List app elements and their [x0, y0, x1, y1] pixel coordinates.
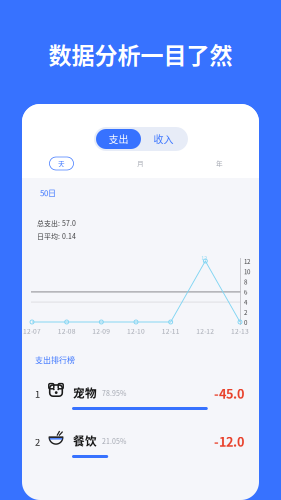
- staticText: 2: [35, 435, 40, 448]
- staticText: 4: [244, 298, 247, 307]
- staticText: 12-07: [23, 326, 41, 336]
- staticText: 12-12: [196, 326, 214, 336]
- staticText: 12: [244, 257, 250, 266]
- staticText: 12: [201, 254, 207, 262]
- staticText: 支出: [108, 132, 128, 146]
- staticText: 收入: [153, 132, 173, 146]
- button[interactable]: 月: [101, 157, 180, 170]
- staticText: 50日: [40, 187, 56, 199]
- button[interactable]: 1: [22, 378, 259, 422]
- staticText: 10: [244, 267, 250, 276]
- button[interactable]: 天: [49, 157, 73, 170]
- staticText: 餐饮: [73, 432, 97, 449]
- staticText: 12-11: [162, 326, 180, 336]
- staticText: 12-13: [231, 326, 249, 336]
- staticText: 21.05%: [102, 436, 126, 446]
- staticText: 支出排行榜: [35, 354, 75, 366]
- staticText: 6: [244, 287, 247, 296]
- staticText: 年: [216, 159, 223, 168]
- staticText: -45.0: [214, 384, 244, 402]
- button[interactable]: 收入: [141, 129, 186, 149]
- staticText: 数据分析一目了然: [48, 37, 232, 71]
- staticText: -12.0: [214, 432, 244, 450]
- staticText: 天: [58, 159, 65, 168]
- staticText: 8: [244, 277, 247, 286]
- staticText: 月: [137, 159, 144, 168]
- staticText: 总支出: 57.0: [37, 218, 76, 228]
- button[interactable]: 年: [180, 157, 259, 170]
- staticText: 2: [244, 308, 247, 317]
- staticText: 宠物: [73, 384, 97, 401]
- staticText: 日平均: 0.14: [37, 231, 76, 241]
- button[interactable]: 支出: [96, 129, 141, 149]
- staticText: 12-09: [92, 326, 110, 336]
- staticText: 1: [35, 387, 40, 400]
- staticText: 0: [244, 318, 247, 327]
- button[interactable]: 2: [22, 426, 259, 470]
- staticText: 12-10: [127, 326, 145, 336]
- staticText: 78.95%: [102, 388, 126, 398]
- staticText: 12-08: [58, 326, 76, 336]
